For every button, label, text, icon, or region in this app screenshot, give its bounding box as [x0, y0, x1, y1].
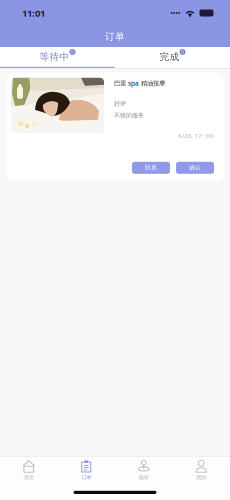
staticText: 等待中: [39, 51, 69, 63]
staticText: 0: [181, 49, 184, 55]
staticText: 11:01: [22, 6, 45, 20]
staticText: 0: [71, 49, 74, 55]
button[interactable]: 等待中: [0, 47, 115, 68]
staticText: 我的: [196, 474, 206, 481]
button[interactable]: 确认: [176, 162, 214, 174]
staticText: 巴里 spa 精油按摩: [114, 79, 165, 87]
button[interactable]: 我的: [172, 460, 230, 481]
staticText: 好评: [114, 100, 126, 107]
button[interactable]: 订单: [57, 460, 115, 481]
staticText: 确认: [189, 164, 201, 171]
button[interactable]: 首页: [0, 460, 57, 481]
staticText: 联系: [145, 164, 157, 171]
staticText: 订单: [105, 30, 125, 43]
button[interactable]: 完成: [115, 47, 230, 68]
staticText: 首页: [24, 474, 34, 481]
staticText: 不错的服务: [114, 111, 144, 119]
button[interactable]: 服务: [115, 460, 172, 481]
staticText: 服务: [139, 474, 149, 481]
staticText: 6/26 17: 00: [178, 131, 214, 140]
button[interactable]: 联系: [132, 162, 170, 174]
staticText: 订单: [81, 474, 91, 481]
staticText: 完成: [159, 51, 179, 63]
